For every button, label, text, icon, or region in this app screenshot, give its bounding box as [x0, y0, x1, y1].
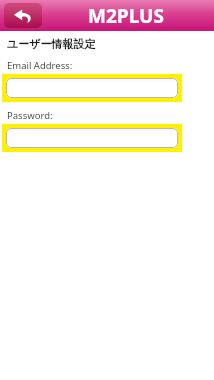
button[interactable]	[2, 74, 182, 102]
button[interactable]: Back	[4, 3, 42, 28]
staticText: M2PLUS	[44, 3, 208, 29]
staticText: Password:	[7, 109, 53, 122]
button[interactable]	[2, 124, 182, 152]
staticText: Email Address:	[7, 59, 73, 72]
staticText: ユーザー情報設定	[7, 37, 96, 51]
